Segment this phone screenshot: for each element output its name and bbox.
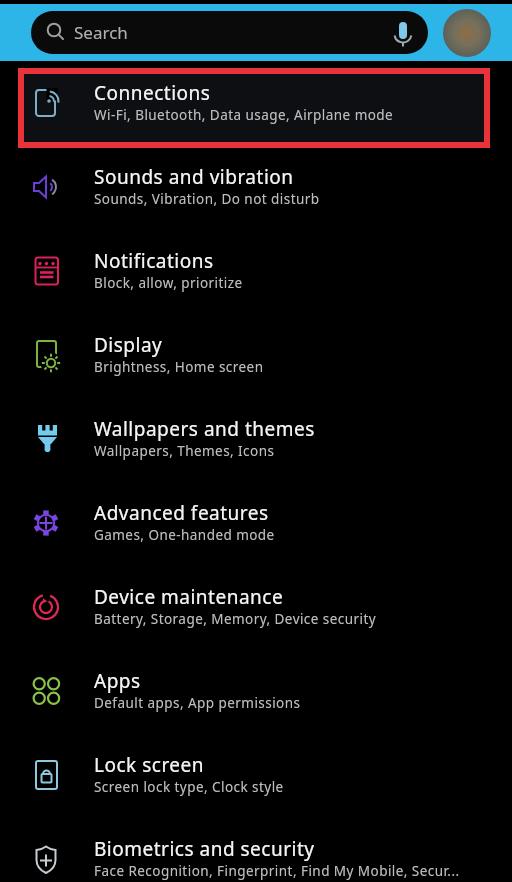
button[interactable]: Biometrics and security [0,820,512,882]
staticText: Sounds, Vibration, Do not disturb [94,190,320,208]
button[interactable]: Apps [0,652,512,736]
staticText: Screen lock type, Clock style [94,778,284,796]
staticText: Brightness, Home screen [94,358,264,376]
button[interactable]: Sounds and vibration [0,148,512,232]
staticText: Lock screen [94,752,205,778]
button[interactable]: Device maintenance [0,568,512,652]
staticText: Display [94,332,163,358]
button[interactable] [443,9,491,57]
staticText: Search [74,21,128,44]
staticText: Wallpapers, Themes, Icons [94,442,275,460]
button[interactable]: Display [0,316,512,400]
button[interactable]: Wallpapers and themes [0,400,512,484]
staticText: Apps [94,668,141,694]
staticText: Biometrics and security [94,836,315,862]
staticText: Games, One-handed mode [94,526,275,544]
staticText: Battery, Storage, Memory, Device securit… [94,610,377,628]
staticText: Default apps, App permissions [94,694,301,712]
staticText: Device maintenance [94,584,284,610]
staticText: Sounds and vibration [94,164,294,190]
staticText: Block, allow, prioritize [94,274,243,292]
staticText: Connections [94,80,211,106]
staticText: Notifications [94,248,214,274]
button[interactable]: Advanced features [0,484,512,568]
staticText: Face Recognition, Fingerprint, Find My M… [94,862,460,880]
button[interactable]: Notifications [0,232,512,316]
staticText: Advanced features [94,500,269,526]
button[interactable]: Search [31,11,428,54]
button[interactable]: Connections [0,64,512,148]
staticText: Wi-Fi, Bluetooth, Data usage, Airplane m… [94,106,394,124]
button[interactable]: Lock screen [0,736,512,820]
staticText: Wallpapers and themes [94,416,315,442]
